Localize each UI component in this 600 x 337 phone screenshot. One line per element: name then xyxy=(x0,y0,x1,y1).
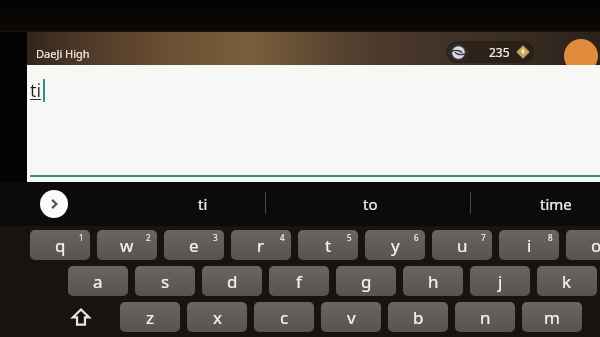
staticText: o xyxy=(591,234,600,257)
staticText: t xyxy=(325,234,332,257)
staticText: y xyxy=(391,234,400,257)
staticText: time xyxy=(540,194,572,214)
staticText: h xyxy=(428,270,439,293)
button[interactable]: z xyxy=(120,302,180,332)
staticText: n xyxy=(480,306,491,329)
staticText: q xyxy=(55,234,66,257)
button[interactable]: q xyxy=(30,230,90,260)
staticText: ti xyxy=(30,78,42,103)
staticText: 5 xyxy=(347,232,352,243)
button[interactable]: to xyxy=(310,182,430,226)
other: Gems xyxy=(515,44,531,60)
button[interactable]: a xyxy=(68,266,128,296)
button[interactable]: s xyxy=(135,266,195,296)
button[interactable]: Volleyball xyxy=(446,41,534,63)
button[interactable]: t xyxy=(298,230,358,260)
staticText: i xyxy=(527,234,532,257)
button[interactable]: Profile xyxy=(564,39,598,73)
staticText: z xyxy=(146,306,154,329)
staticText: a xyxy=(93,270,103,293)
button[interactable]: x xyxy=(187,302,247,332)
staticText: 1 xyxy=(79,232,84,243)
button[interactable]: k xyxy=(537,266,597,296)
staticText: w xyxy=(120,234,134,257)
button[interactable]: i xyxy=(499,230,559,260)
staticText: m xyxy=(544,306,560,329)
button[interactable]: f xyxy=(269,266,329,296)
staticText: to xyxy=(363,194,378,214)
staticText: DaeJi High xyxy=(36,46,90,61)
button[interactable]: j xyxy=(470,266,530,296)
other: Volleyball xyxy=(450,44,467,61)
staticText: 235 xyxy=(489,44,510,60)
staticText: x xyxy=(213,306,222,329)
staticText: d xyxy=(227,270,238,293)
staticText: 6 xyxy=(414,232,419,243)
button[interactable]: o xyxy=(566,230,600,260)
staticText: k xyxy=(562,270,572,293)
staticText: 4 xyxy=(280,232,285,243)
button[interactable]: h xyxy=(403,266,463,296)
button[interactable]: b xyxy=(388,302,448,332)
staticText: u xyxy=(457,234,468,257)
button[interactable]: g xyxy=(336,266,396,296)
staticText: 7 xyxy=(481,232,486,243)
staticText: j xyxy=(498,270,503,293)
staticText: 2 xyxy=(146,232,151,243)
button[interactable]: v xyxy=(321,302,381,332)
staticText: r xyxy=(257,234,265,257)
staticText: v xyxy=(347,306,356,329)
staticText: f xyxy=(296,270,302,293)
button[interactable]: c xyxy=(254,302,314,332)
staticText: 8 xyxy=(548,232,553,243)
button[interactable]: time xyxy=(512,182,600,226)
staticText: ti xyxy=(198,194,208,214)
button[interactable]: ti xyxy=(140,182,265,226)
button[interactable]: d xyxy=(202,266,262,296)
button[interactable]: w xyxy=(97,230,157,260)
button[interactable]: Shift xyxy=(52,302,110,332)
button[interactable]: m xyxy=(522,302,582,332)
staticText: s xyxy=(161,270,170,293)
button[interactable]: DaeJi High xyxy=(36,46,90,61)
button[interactable]: n xyxy=(455,302,515,332)
button[interactable]: y xyxy=(365,230,425,260)
button[interactable]: e xyxy=(164,230,224,260)
button[interactable]: u xyxy=(432,230,492,260)
staticText: b xyxy=(413,306,424,329)
staticText: g xyxy=(361,270,372,293)
staticText: c xyxy=(280,306,289,329)
staticText: e xyxy=(189,234,199,257)
staticText: 3 xyxy=(213,232,218,243)
button[interactable]: More suggestions xyxy=(40,190,68,218)
button[interactable]: r xyxy=(231,230,291,260)
